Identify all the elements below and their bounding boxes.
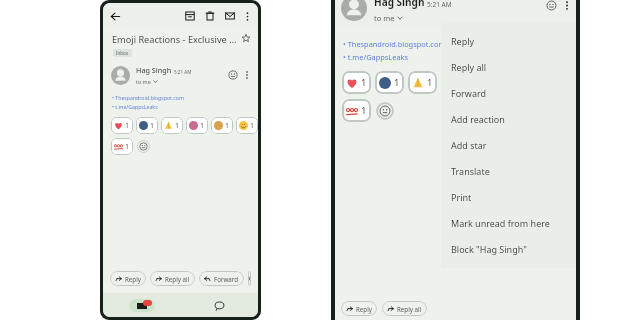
staticText: Hag Singh [136,65,172,75]
button[interactable]: Add reaction [248,271,251,286]
staticText: Reply all [397,305,422,313]
staticText: 1 [175,121,180,131]
staticText: Reply [356,305,372,313]
staticText: Mark unread from here [451,217,550,229]
staticText: to me [374,13,395,23]
button[interactable]: 1 [111,138,133,155]
staticText: to me [136,78,151,85]
staticText: Translate [451,165,490,177]
button[interactable]: Reply all [382,301,427,316]
button[interactable]: Translate [441,158,576,184]
button[interactable]: Print [441,184,576,210]
button[interactable]: Reply [341,301,377,316]
button[interactable]: 1 [161,117,183,134]
staticText: 1 [250,121,255,131]
staticText: Inbox [116,50,129,56]
button[interactable]: Forward [441,80,576,106]
button[interactable]: to me [374,13,403,23]
staticText: 1 [427,76,433,89]
button[interactable]: Mail [103,293,180,317]
button[interactable]: 1 [375,71,404,94]
staticText: Forward [451,87,487,99]
button[interactable]: 1 [408,71,437,94]
button[interactable]: Reply all [150,271,195,286]
button[interactable]: 1 [441,71,470,94]
button[interactable]: Reply all [441,54,576,80]
button[interactable]: 1 [136,117,158,134]
button[interactable]: More options [244,11,251,22]
button[interactable]: Add reaction [228,70,238,80]
button[interactable]: Mark unread [225,11,235,21]
button[interactable]: 1 [342,71,371,94]
button[interactable]: Delete [205,11,215,21]
staticText: 5:21 AM [427,0,452,9]
staticText: • t.me/GappsLeaks [112,103,158,110]
button[interactable]: 1 [111,117,133,134]
button[interactable]: Add reaction [376,102,394,120]
button[interactable]: Reply [441,28,576,54]
button[interactable]: Add reaction [441,106,576,132]
button[interactable]: 1 [342,99,371,122]
staticText: Reply all [451,61,487,73]
staticText: Forward [214,275,239,283]
button[interactable]: Reply [110,271,146,286]
button[interactable]: More [244,70,250,80]
staticText: 1 [394,76,400,89]
staticText: Add star [451,139,487,151]
button[interactable]: More options [564,0,570,11]
button[interactable]: Star [241,33,251,43]
button[interactable]: Chat [180,293,258,317]
staticText: Reply [451,35,475,47]
staticText: Emoji Reactions - Exclusive Look [112,33,238,46]
staticText: 1 [150,121,155,131]
button[interactable]: to me [136,78,158,85]
staticText: Block "Hag Singh" [451,243,527,255]
button[interactable]: Mark unread from here [441,210,576,236]
staticText: 1 [361,104,367,117]
staticText: Print [451,191,472,203]
staticText: 1 [125,142,130,152]
button[interactable]: 1 [186,117,208,134]
button[interactable]: Back [110,11,121,22]
staticText: • Thespandroid.blogspot.com [112,94,184,101]
button[interactable]: 1 [236,117,258,134]
button[interactable]: 1 [211,117,233,134]
button[interactable]: Block "Hag Singh" [441,236,576,262]
staticText: • t.me/GappsLeaks [343,52,409,62]
button[interactable]: Add reaction [137,140,150,153]
staticText: Reply [125,275,141,283]
staticText: • Thespandroid.blogspot.com [343,39,446,49]
button[interactable]: Archive [185,11,195,21]
button[interactable]: Forward [199,271,244,286]
staticText: Hag Singh [374,0,425,9]
staticText: Reply all [165,275,190,283]
staticText: 1 [200,121,205,131]
button[interactable]: Add reaction [546,0,557,11]
staticText: 1 [361,76,367,89]
staticText: 5:21 AM [174,69,192,75]
staticText: 1 [125,121,130,131]
button[interactable]: Add star [441,132,576,158]
staticText: Add reaction [451,113,505,125]
staticText: 1 [225,121,230,131]
